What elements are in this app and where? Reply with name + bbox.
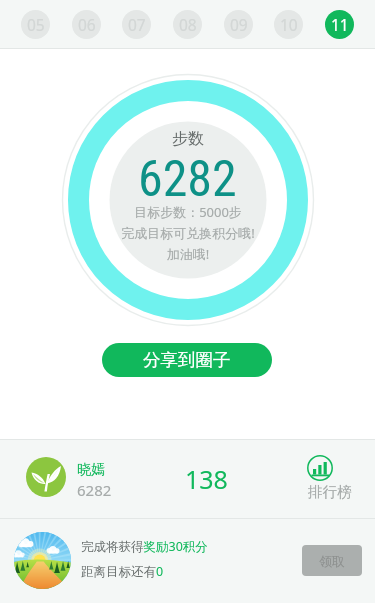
staticText: 09	[230, 14, 248, 35]
staticText: 138	[185, 462, 228, 496]
button[interactable]: 08	[173, 10, 202, 39]
button[interactable]: 分享到圈子	[102, 343, 272, 377]
button[interactable]: 领取	[302, 545, 362, 576]
staticText: 排行榜	[308, 483, 352, 501]
button[interactable]: 06	[72, 10, 101, 39]
staticText: 08	[179, 14, 197, 35]
button[interactable]: 11	[325, 10, 354, 39]
button[interactable]	[0, 440, 375, 518]
staticText: 6282	[77, 480, 112, 500]
staticText: 目标步数：5000步 完成目标可兑换积分哦! 加油哦!	[121, 203, 255, 263]
staticText: 距离目标还有0	[81, 563, 164, 580]
button[interactable]: 05	[21, 10, 50, 39]
button[interactable]: 09	[224, 10, 253, 39]
staticText: 步数	[172, 129, 204, 149]
button[interactable]: 07	[122, 10, 151, 39]
staticText: 10	[280, 14, 298, 35]
button[interactable]	[0, 519, 375, 603]
staticText: 完成将获得奖励30积分	[81, 538, 208, 555]
staticText: 分享到圈子	[143, 349, 231, 371]
staticText: 6282	[138, 150, 237, 209]
staticText: 06	[78, 14, 96, 35]
staticText: 05	[27, 14, 45, 35]
staticText: 07	[128, 14, 146, 35]
staticText: 晓嫣	[77, 461, 105, 479]
staticText: 领取	[319, 553, 345, 569]
staticText: 11	[331, 14, 349, 35]
button[interactable]: 10	[274, 10, 303, 39]
button[interactable]: 排行榜	[300, 451, 360, 511]
